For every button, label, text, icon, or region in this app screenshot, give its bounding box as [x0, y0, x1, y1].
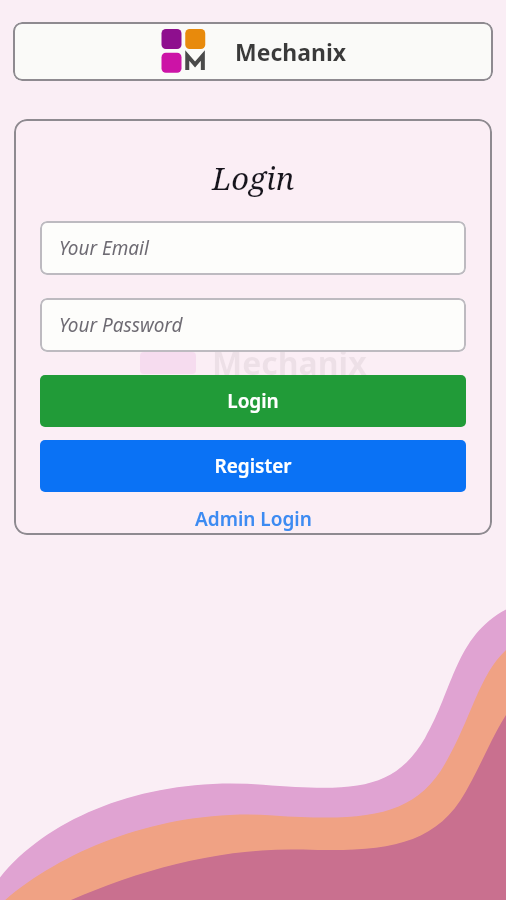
button[interactable]: Admin Login — [183, 502, 324, 535]
staticText: Login — [212, 157, 295, 199]
button[interactable]: Mechanix — [13, 22, 493, 81]
staticText: Register — [214, 453, 292, 479]
staticText: Admin Login — [195, 506, 312, 531]
button[interactable]: Your Password — [40, 298, 466, 352]
button[interactable]: Login — [40, 375, 466, 427]
button[interactable]: Your Email — [40, 221, 466, 275]
staticText: Mechanix — [235, 36, 347, 67]
staticText: Login — [227, 388, 279, 414]
button[interactable]: Register — [40, 440, 466, 492]
staticText: Your Password — [59, 312, 183, 338]
staticText: Mechanix — [212, 341, 367, 385]
staticText: Your Email — [59, 235, 149, 261]
